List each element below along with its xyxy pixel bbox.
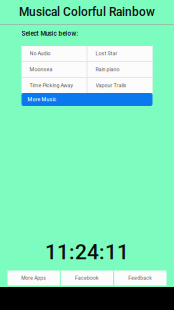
- staticText: Musical Colorful Rainbow: [19, 5, 155, 19]
- staticText: More Apps: [21, 275, 46, 281]
- button[interactable]: More Apps: [7, 270, 60, 285]
- button[interactable]: Lost Star: [87, 46, 152, 61]
- staticText: No Audio: [29, 50, 50, 57]
- staticText: 11:24:11: [45, 240, 129, 264]
- button[interactable]: Vapour Trails: [87, 78, 152, 93]
- button[interactable]: Moonsea: [21, 62, 86, 77]
- staticText: Feedback: [128, 275, 152, 281]
- staticText: More Music: [27, 96, 56, 103]
- staticText: Time Picking Away: [29, 82, 73, 89]
- staticText: Moonsea: [29, 66, 52, 73]
- staticText: Rain piano: [95, 66, 119, 73]
- button[interactable]: Facebook: [61, 270, 113, 285]
- staticText: Vapour Trails: [95, 82, 126, 89]
- button[interactable]: No Audio: [21, 46, 86, 61]
- button[interactable]: Time Picking Away: [21, 78, 86, 93]
- button[interactable]: Feedback: [114, 270, 166, 285]
- staticText: Lost Star: [95, 50, 117, 57]
- staticText: Select Music below:: [21, 30, 78, 37]
- staticText: Facebook: [75, 275, 99, 281]
- button[interactable]: More Music: [21, 93, 152, 106]
- button[interactable]: Rain piano: [87, 62, 152, 77]
